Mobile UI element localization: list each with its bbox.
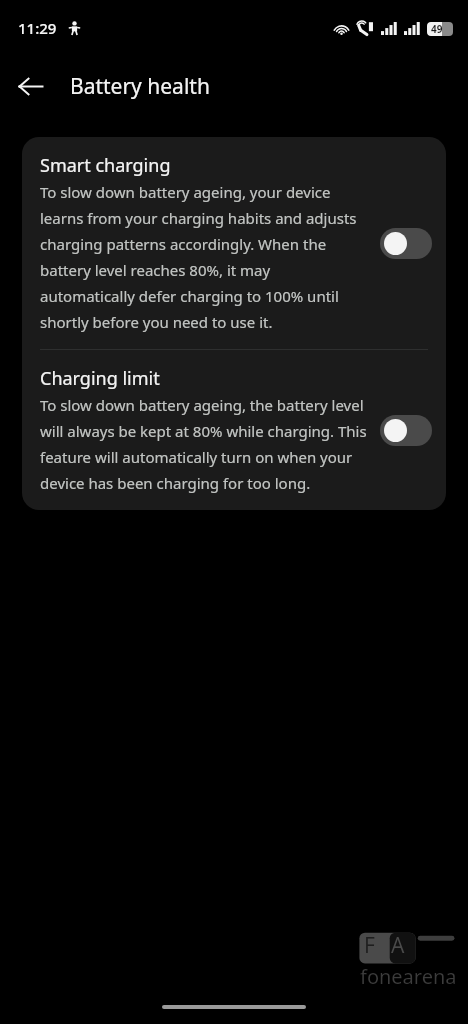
staticText: Smart charging (40, 153, 171, 178)
staticText: To slow down battery ageing, the battery… (40, 395, 368, 494)
staticText: 49 (431, 22, 443, 36)
button[interactable]: Charging limit (22, 350, 446, 510)
staticText: A (391, 931, 405, 960)
button[interactable]: Smart charging (22, 137, 446, 349)
button[interactable]: Toggle (380, 228, 432, 259)
staticText: Charging limit (40, 366, 160, 391)
staticText: F (364, 931, 375, 960)
button[interactable]: Toggle (380, 415, 432, 446)
button[interactable]: Back (6, 62, 54, 110)
staticText: To slow down battery ageing, your device… (40, 182, 368, 333)
staticText: fonearena (360, 963, 457, 990)
staticText: 11:29 (18, 18, 57, 38)
staticText: Battery health (70, 72, 210, 101)
